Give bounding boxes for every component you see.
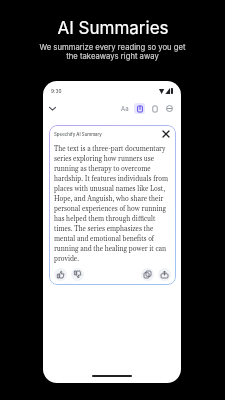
button[interactable]: Aa [120, 105, 130, 112]
button[interactable]: More options [164, 103, 175, 114]
staticText: We summarize every reading so you get th… [39, 43, 186, 61]
staticText: Speechify AI Summary [54, 132, 102, 137]
button[interactable]: AI summary [134, 103, 145, 114]
button[interactable]: Like [54, 268, 67, 281]
button[interactable]: Notes [149, 103, 160, 114]
staticText: 9:30 [51, 88, 62, 94]
staticText: AI Summaries [57, 18, 169, 39]
button[interactable]: Close [161, 129, 171, 139]
button[interactable]: Dislike [71, 268, 84, 281]
staticText: The text is a three-part documentary ser… [54, 145, 171, 263]
button[interactable]: Copy [141, 268, 154, 281]
button[interactable]: Collapse [46, 102, 59, 115]
button[interactable]: Share [158, 268, 171, 281]
